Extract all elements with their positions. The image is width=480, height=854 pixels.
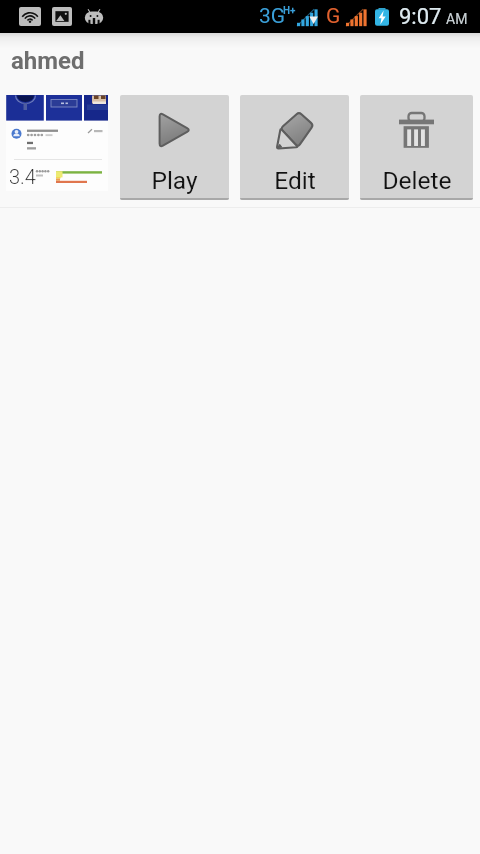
staticText: 3G [259,4,286,29]
staticText: AM [446,11,468,27]
button[interactable]: Delete [360,95,473,200]
button[interactable]: Video thumbnail [6,95,108,191]
staticText: Play [151,166,198,195]
staticText: Delete [382,166,452,195]
staticText: H+ [283,5,296,17]
staticText: G [326,4,341,29]
button[interactable]: Edit [240,95,349,200]
staticText: Edit [274,166,316,195]
staticText: 3.4 [9,165,36,188]
staticText: 9:07 [399,4,442,30]
staticText: ahmed [11,47,85,75]
button[interactable]: Play [120,95,229,200]
